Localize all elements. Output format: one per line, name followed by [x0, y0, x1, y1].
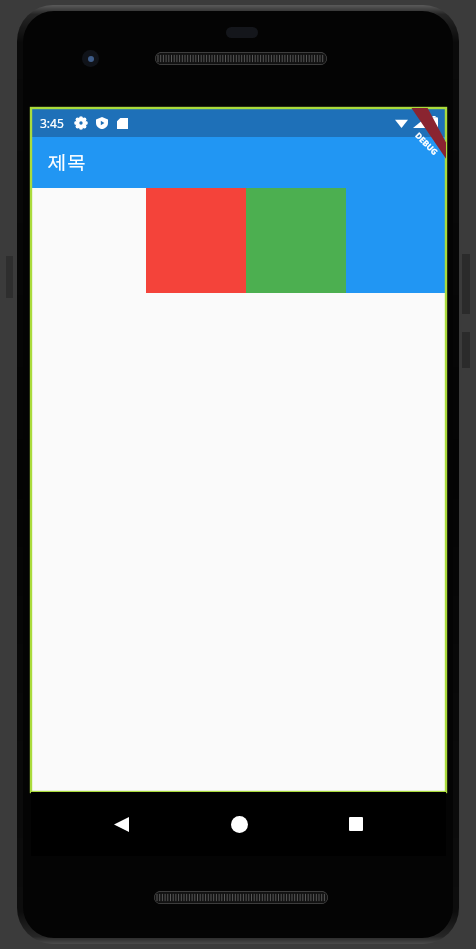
staticText: 3:45: [40, 115, 64, 131]
button[interactable]: Back: [94, 797, 148, 851]
button[interactable]: Recent apps: [329, 797, 383, 851]
button[interactable]: 제목: [31, 137, 446, 188]
staticText: DEBUG: [413, 130, 441, 157]
button[interactable]: Home: [212, 797, 266, 851]
button[interactable]: [346, 188, 446, 293]
staticText: 제목: [48, 151, 86, 175]
